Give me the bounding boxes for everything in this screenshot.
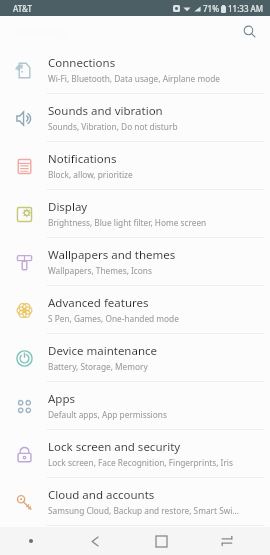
staticText: Block, allow, prioritize bbox=[48, 169, 133, 180]
staticText: Samsung Cloud, Backup and restore, Smart… bbox=[48, 505, 240, 516]
staticText: Lock screen, Face Recognition, Fingerpri… bbox=[48, 457, 233, 468]
button[interactable]: Display bbox=[0, 190, 270, 237]
staticText: Sounds and vibration bbox=[48, 103, 163, 119]
staticText: AT&T bbox=[13, 3, 32, 14]
staticText: Advanced features bbox=[48, 295, 149, 311]
staticText: Cloud and accounts bbox=[48, 487, 155, 503]
button[interactable]: Advanced features bbox=[0, 286, 270, 333]
staticText: Sounds, Vibration, Do not disturb bbox=[48, 121, 178, 132]
staticText: Notifications bbox=[48, 151, 117, 167]
staticText: Battery, Storage, Memory bbox=[48, 361, 148, 372]
staticText: Brightness, Blue light filter, Home scre… bbox=[48, 217, 207, 228]
button[interactable]: Assistant bbox=[0, 527, 62, 555]
button[interactable]: Notifications bbox=[0, 142, 270, 189]
staticText: S Pen, Games, One-handed mode bbox=[48, 313, 179, 324]
button[interactable]: Apps bbox=[0, 382, 270, 429]
staticText: Wallpapers, Themes, Icons bbox=[48, 265, 152, 276]
button[interactable]: Cloud and accounts bbox=[0, 478, 270, 525]
staticText: Display bbox=[48, 199, 88, 215]
button[interactable]: Sounds and vibration bbox=[0, 94, 270, 141]
staticText: Wallpapers and themes bbox=[48, 247, 176, 263]
button[interactable]: Home bbox=[128, 527, 194, 555]
button[interactable]: Device maintenance bbox=[0, 334, 270, 381]
staticText: Default apps, App permissions bbox=[48, 409, 167, 420]
staticText: 11:33 AM bbox=[228, 3, 264, 14]
staticText: Connections bbox=[48, 55, 116, 71]
button[interactable]: Back bbox=[62, 527, 128, 555]
button[interactable]: Search bbox=[236, 18, 262, 44]
button[interactable]: Connections bbox=[0, 46, 270, 93]
staticText: Wi-Fi, Bluetooth, Data usage, Airplane m… bbox=[48, 73, 220, 84]
staticText: 71% bbox=[203, 3, 219, 14]
staticText: Apps bbox=[48, 391, 76, 407]
staticText: Device maintenance bbox=[48, 343, 158, 359]
staticText: Lock screen and security bbox=[48, 439, 181, 455]
button[interactable]: Wallpapers and themes bbox=[0, 238, 270, 285]
button[interactable]: Recents bbox=[194, 527, 260, 555]
button[interactable]: Lock screen and security bbox=[0, 430, 270, 477]
